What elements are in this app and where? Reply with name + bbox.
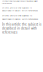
staticText: In this article the subject is described…	[2, 6, 38, 12]
staticText: In this article the subject is described…	[2, 22, 41, 34]
staticText: In this article the subject is described…	[2, 14, 38, 20]
staticText: In this article the subject is described…	[2, 0, 38, 4]
